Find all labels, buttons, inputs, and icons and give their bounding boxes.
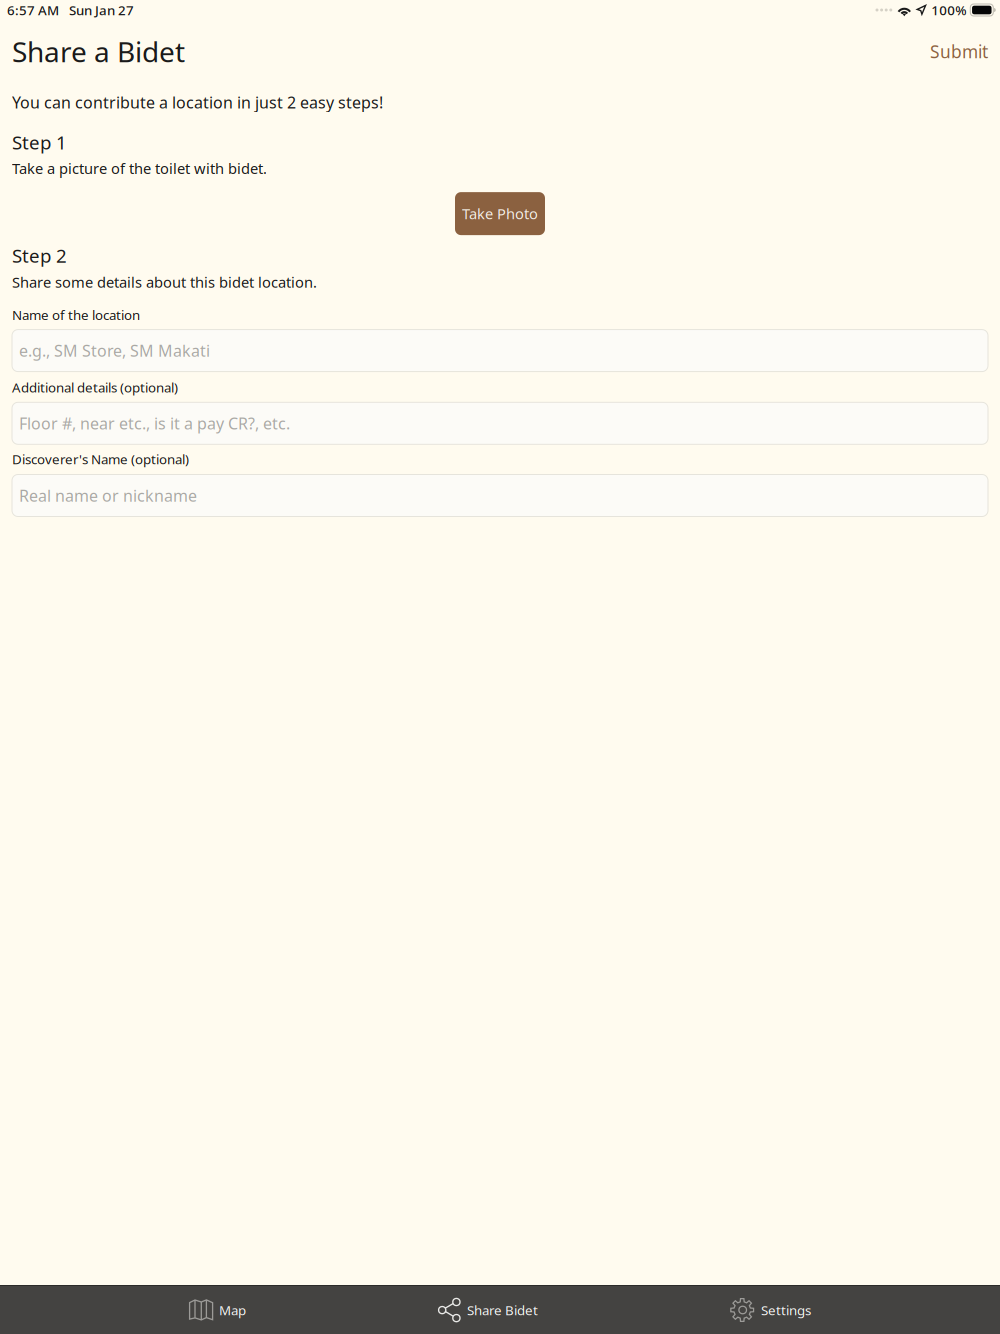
staticText: Floor #, near etc., is it a pay CR?, etc… [19, 413, 290, 434]
staticText: Name of the location [12, 306, 140, 324]
staticText: Map [219, 1301, 246, 1319]
staticText: Share some details about this bidet loca… [12, 272, 317, 292]
staticText: Share a Bidet [12, 33, 185, 70]
staticText: Additional details (optional) [12, 379, 178, 396]
staticText: 6:57 AM [7, 1, 59, 19]
staticText: Take a picture of the toilet with bidet. [12, 159, 267, 178]
button[interactable]: Take Photo [455, 192, 545, 235]
staticText: Settings [761, 1301, 811, 1319]
staticText: 100% [931, 1, 966, 19]
button[interactable]: Submit [924, 33, 994, 70]
button[interactable]: Share Bidet [438, 1286, 538, 1334]
staticText: Step 1 [12, 130, 67, 155]
staticText: Share Bidet [467, 1301, 538, 1319]
staticText: Real name or nickname [19, 485, 197, 506]
staticText: Discoverer's Name (optional) [12, 450, 189, 468]
staticText: You can contribute a location in just 2 … [12, 92, 383, 113]
staticText: Take Photo [462, 204, 538, 223]
staticText: Step 2 [12, 243, 67, 268]
staticText: Submit [930, 40, 988, 63]
staticText: e.g., SM Store, SM Makati [19, 340, 210, 361]
staticText: Sun Jan 27 [69, 1, 134, 19]
button[interactable]: Settings [730, 1286, 811, 1334]
button[interactable]: Map [189, 1286, 246, 1334]
